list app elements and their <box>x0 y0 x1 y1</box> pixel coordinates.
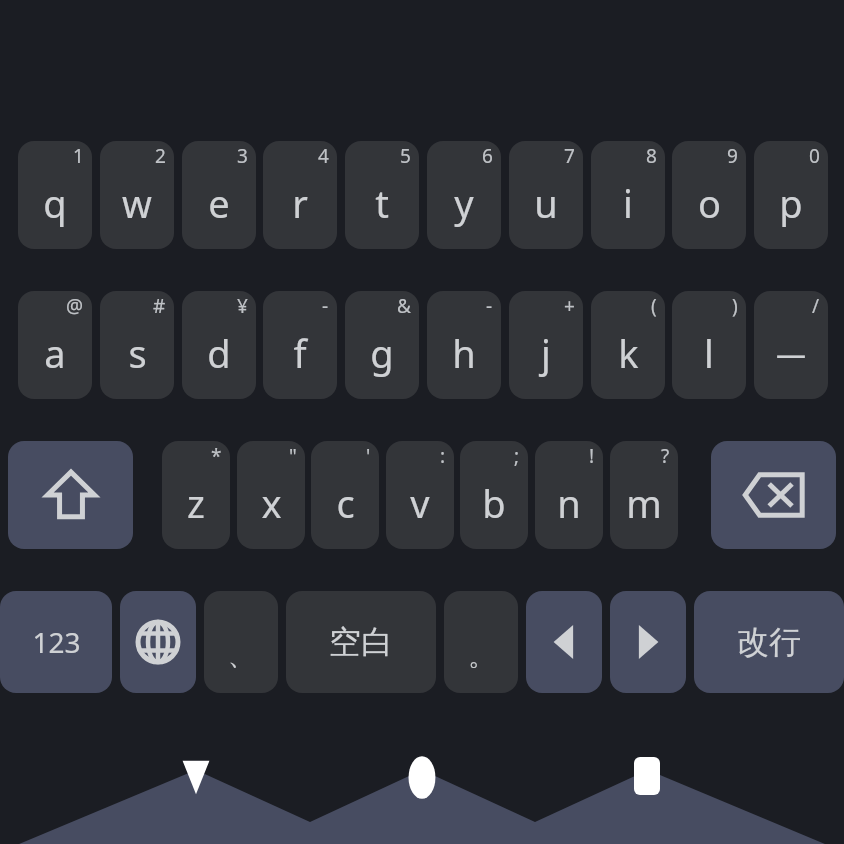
button[interactable]: 3 <box>182 141 256 249</box>
staticText: v <box>410 477 430 529</box>
staticText: / <box>812 293 820 319</box>
staticText: + <box>564 293 575 319</box>
staticText: s <box>128 327 147 379</box>
button[interactable]: @ <box>18 291 92 399</box>
button[interactable]: 9 <box>672 141 746 249</box>
staticText: d <box>207 327 231 379</box>
staticText: 9 <box>727 143 738 169</box>
staticText: z <box>187 477 205 529</box>
staticText: g <box>370 327 394 379</box>
staticText: q <box>43 177 67 229</box>
staticText: b <box>482 477 506 529</box>
staticText: o <box>698 177 721 229</box>
button[interactable]: 。 <box>444 591 518 693</box>
button[interactable]: 7 <box>509 141 583 249</box>
staticText: 8 <box>646 143 657 169</box>
button[interactable]: ) <box>672 291 746 399</box>
staticText: ? <box>661 443 670 469</box>
button[interactable]: Recent apps <box>624 753 670 803</box>
staticText: 7 <box>564 143 575 169</box>
staticText: r <box>292 177 308 229</box>
button[interactable]: & <box>345 291 419 399</box>
staticText: u <box>534 177 558 229</box>
button[interactable]: Move cursor left <box>526 591 602 693</box>
staticText: ) <box>732 293 738 319</box>
button[interactable]: " <box>237 441 305 549</box>
button[interactable]: ! <box>535 441 603 549</box>
staticText: 、 <box>228 640 254 673</box>
button[interactable]: Home <box>398 752 446 804</box>
staticText: ¥ <box>237 293 248 319</box>
staticText: h <box>452 327 476 379</box>
staticText: 空白 <box>329 622 393 662</box>
staticText: ' <box>366 443 371 469</box>
button[interactable]: ? <box>610 441 678 549</box>
button[interactable]: Switch language <box>120 591 196 693</box>
staticText: 。 <box>468 640 494 673</box>
staticText: 1 <box>73 143 84 169</box>
staticText: # <box>153 293 166 319</box>
staticText: f <box>293 327 307 379</box>
staticText: i <box>623 177 633 229</box>
button[interactable]: ¥ <box>182 291 256 399</box>
button[interactable]: 空白 <box>286 591 436 693</box>
staticText: x <box>261 477 282 529</box>
staticText: : <box>440 443 446 469</box>
button[interactable]: 改行 <box>694 591 844 693</box>
button[interactable]: 2 <box>100 141 174 249</box>
staticText: y <box>454 177 474 229</box>
staticText: k <box>618 327 639 379</box>
staticText: ; <box>514 443 520 469</box>
staticText: m <box>626 477 662 529</box>
button[interactable]: 4 <box>263 141 337 249</box>
staticText: * <box>211 443 222 469</box>
staticText: p <box>779 177 803 229</box>
button[interactable]: ' <box>311 441 379 549</box>
staticText: 2 <box>155 143 166 169</box>
staticText: - <box>322 293 329 319</box>
button[interactable]: - <box>263 291 337 399</box>
button[interactable]: / <box>754 291 828 399</box>
button[interactable]: # <box>100 291 174 399</box>
staticText: 5 <box>400 143 411 169</box>
button[interactable]: 1 <box>18 141 92 249</box>
button[interactable]: Backspace <box>711 441 836 549</box>
staticText: n <box>557 477 581 529</box>
button[interactable]: 6 <box>427 141 501 249</box>
staticText: 4 <box>318 143 329 169</box>
button[interactable]: 123 <box>0 591 112 693</box>
staticText: @ <box>66 293 84 319</box>
staticText: c <box>336 477 355 529</box>
staticText: j <box>541 327 551 379</box>
button[interactable]: ; <box>460 441 528 549</box>
staticText: - <box>486 293 493 319</box>
staticText: a <box>44 327 66 379</box>
button[interactable]: Shift <box>8 441 133 549</box>
button[interactable]: Move cursor right <box>610 591 686 693</box>
staticText: & <box>397 293 411 319</box>
staticText: 6 <box>482 143 493 169</box>
staticText: l <box>704 327 714 379</box>
button[interactable]: 5 <box>345 141 419 249</box>
staticText: ( <box>651 293 657 319</box>
staticText: t <box>375 177 389 229</box>
button[interactable]: 、 <box>204 591 278 693</box>
button[interactable]: 8 <box>591 141 665 249</box>
button[interactable]: - <box>427 291 501 399</box>
button[interactable]: * <box>162 441 230 549</box>
button[interactable]: Back <box>172 755 220 803</box>
staticText: 123 <box>32 623 81 661</box>
button[interactable]: : <box>386 441 454 549</box>
staticText: 0 <box>809 143 820 169</box>
staticText: 改行 <box>737 622 801 662</box>
staticText: — <box>776 333 806 374</box>
button[interactable]: 0 <box>754 141 828 249</box>
staticText: " <box>289 443 297 469</box>
button[interactable]: + <box>509 291 583 399</box>
staticText: ! <box>589 443 595 469</box>
staticText: 3 <box>237 143 248 169</box>
staticText: w <box>122 177 152 229</box>
button[interactable]: ( <box>591 291 665 399</box>
staticText: e <box>208 177 230 229</box>
